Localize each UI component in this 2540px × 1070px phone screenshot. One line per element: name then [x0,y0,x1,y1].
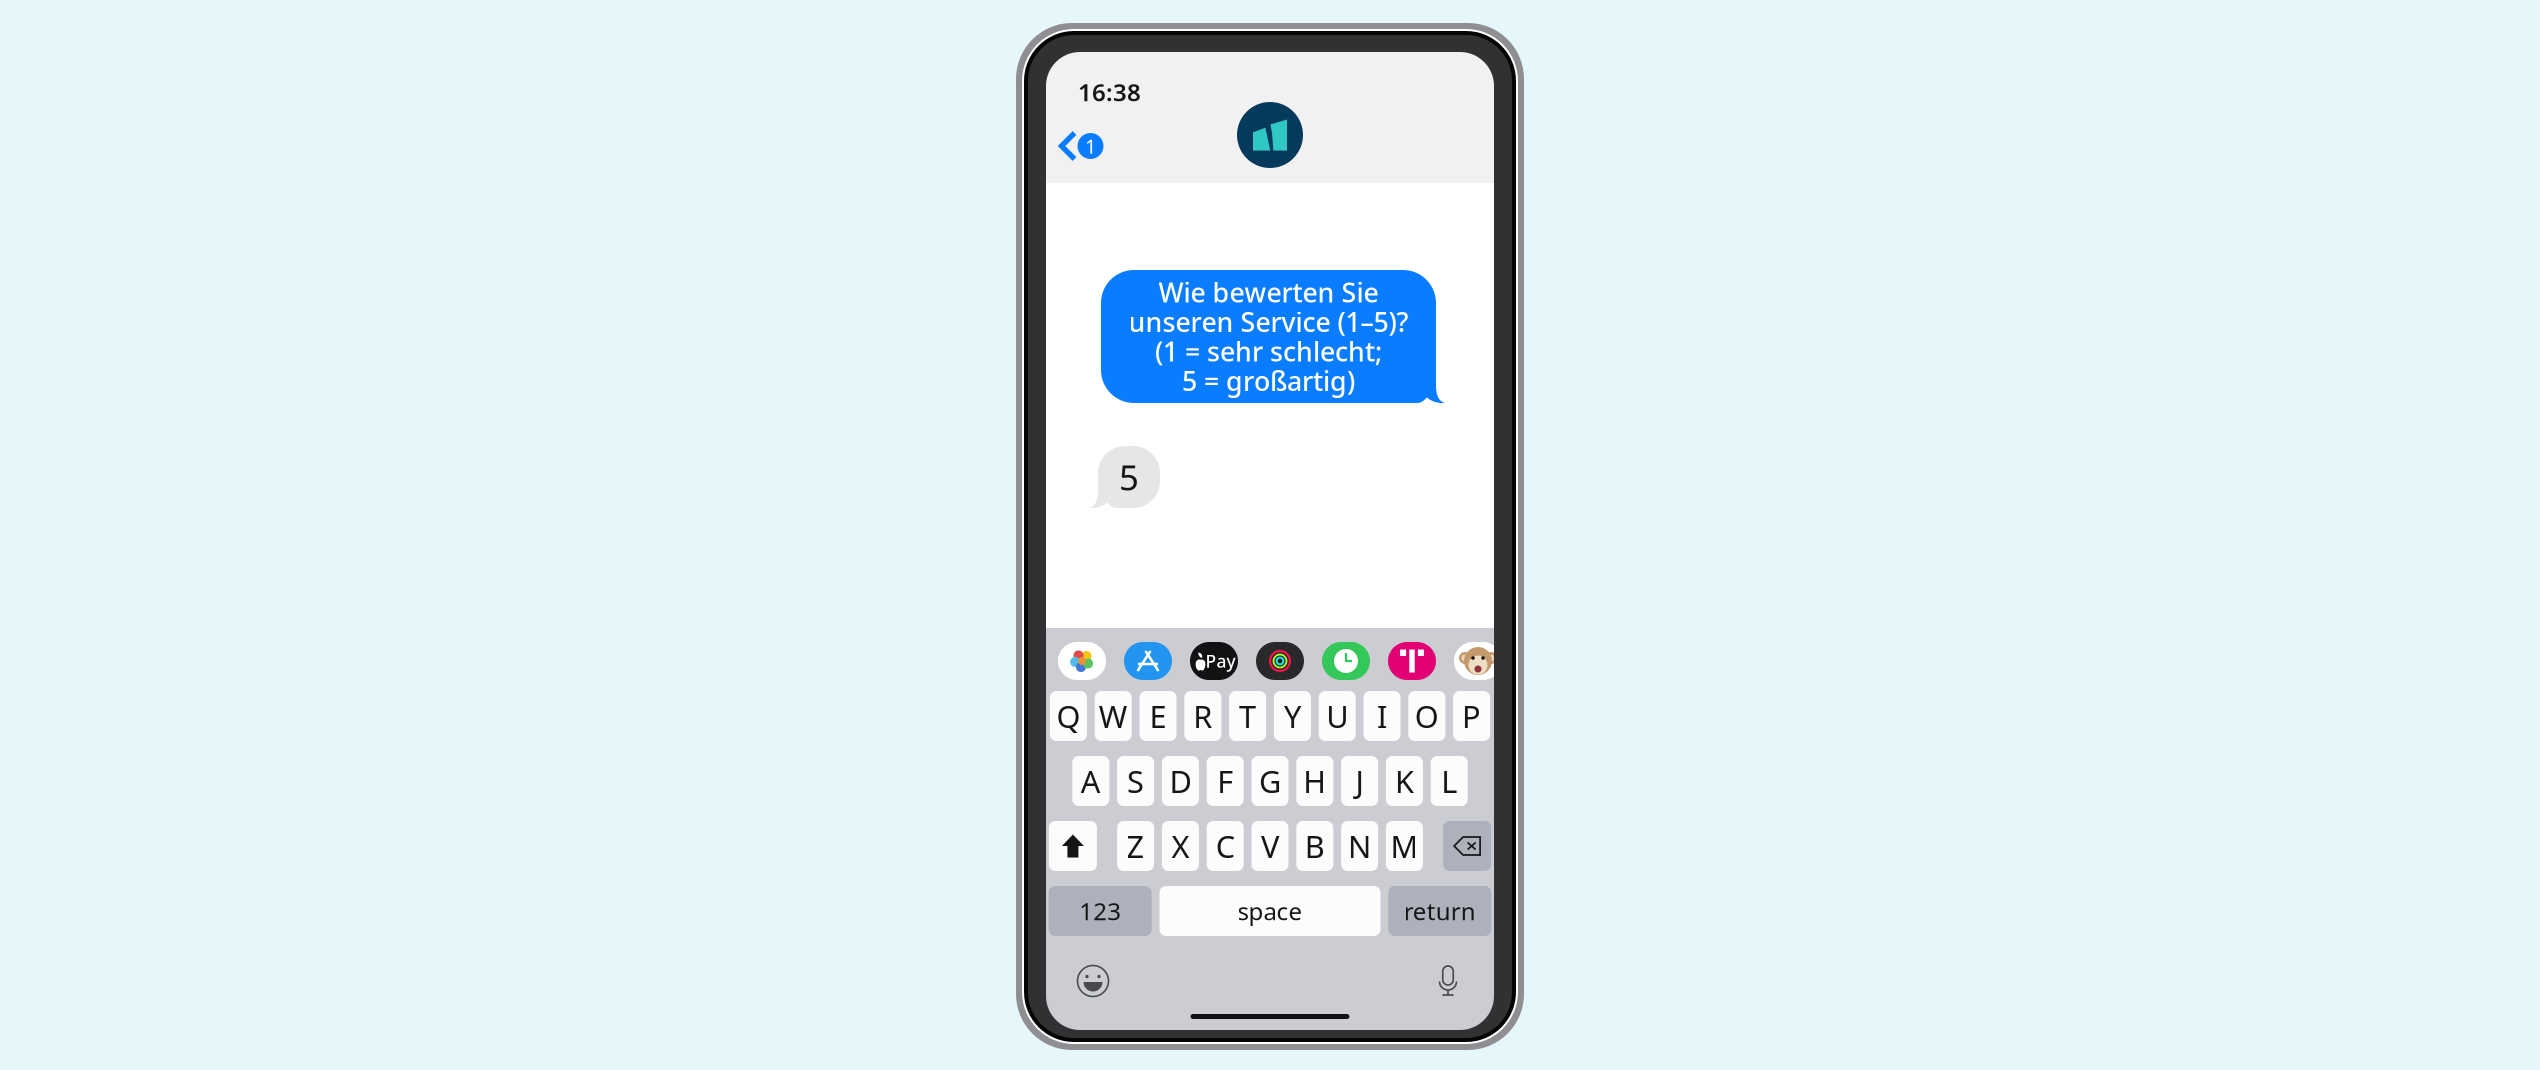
button[interactable]: Apple Pay [1190,642,1238,680]
button[interactable]: B [1296,821,1333,871]
staticText: R [1193,696,1212,736]
button[interactable]: Z [1117,821,1154,871]
staticText: 16:38 [1078,76,1141,108]
button[interactable]: F [1207,756,1244,806]
button[interactable]: Emoji [1076,964,1110,998]
staticText: B [1305,826,1325,866]
staticText: (1 = sehr schlecht; [1155,333,1382,369]
button[interactable]: Dictate [1436,965,1460,997]
staticText: Z [1127,826,1145,866]
staticText: O [1415,696,1439,736]
button[interactable]: Back [1056,126,1106,166]
button[interactable]: I [1363,691,1400,741]
staticText: I [1377,696,1387,736]
staticText: U [1326,696,1348,736]
staticText: Q [1056,696,1080,736]
button[interactable]: Q [1050,691,1087,741]
button[interactable]: Photos [1058,642,1106,680]
button[interactable]: return [1388,886,1491,936]
button[interactable]: 123 [1049,886,1152,936]
staticText: G [1259,761,1281,801]
staticText: M [1390,826,1418,866]
button[interactable]: S [1117,756,1154,806]
staticText: L [1441,761,1457,801]
staticText: T [1239,696,1256,736]
button[interactable]: Fitness [1256,642,1304,680]
button[interactable]: Clock [1322,642,1370,680]
button[interactable]: J [1341,756,1378,806]
staticText: E [1149,696,1166,736]
button[interactable]: P [1453,691,1490,741]
staticText: X [1171,826,1189,866]
button[interactable]: D [1162,756,1199,806]
button[interactable]: space [1159,886,1380,936]
button[interactable]: G [1251,756,1288,806]
staticText: P [1462,696,1481,736]
button[interactable]: O [1408,691,1445,741]
staticText: A [1081,761,1101,801]
staticText: Pay [1205,649,1235,672]
staticText: W [1099,696,1128,736]
button[interactable]: K [1386,756,1423,806]
button[interactable]: Y [1274,691,1311,741]
button[interactable]: Delete [1443,821,1491,871]
button[interactable]: N [1341,821,1378,871]
button[interactable]: X [1162,821,1199,871]
staticText: D [1169,761,1191,801]
button[interactable]: U [1319,691,1356,741]
staticText: C [1216,826,1235,866]
staticText: 5 = großartig) [1182,363,1355,398]
button[interactable]: L [1431,756,1468,806]
staticText: Y [1284,696,1301,736]
button[interactable]: V [1251,821,1288,871]
staticText: H [1303,761,1326,801]
staticText: space [1237,895,1302,927]
staticText: J [1356,761,1364,801]
staticText: return [1404,895,1476,927]
button[interactable]: App Store [1124,642,1172,680]
button[interactable]: Shift [1049,821,1097,871]
staticText: 5 [1119,454,1139,500]
button[interactable]: W [1095,691,1132,741]
button[interactable]: H [1296,756,1333,806]
staticText: V [1261,826,1279,866]
staticText: F [1217,761,1233,801]
button[interactable]: M [1386,821,1423,871]
staticText: N [1348,826,1371,866]
button[interactable]: E [1139,691,1176,741]
button[interactable]: R [1184,691,1221,741]
button[interactable]: Contact profile [1237,102,1303,168]
button[interactable]: Telekom [1388,642,1436,680]
staticText: unseren Service (1–5)? [1128,304,1408,339]
button[interactable]: C [1207,821,1244,871]
staticText: 1 [1085,133,1096,159]
staticText: K [1395,761,1414,801]
button[interactable]: Memoji [1454,642,1502,680]
staticText: S [1127,761,1144,801]
staticText: Wie bewerten Sie [1158,274,1378,310]
button[interactable]: A [1072,756,1109,806]
button[interactable]: T [1229,691,1266,741]
staticText: 123 [1079,895,1121,927]
